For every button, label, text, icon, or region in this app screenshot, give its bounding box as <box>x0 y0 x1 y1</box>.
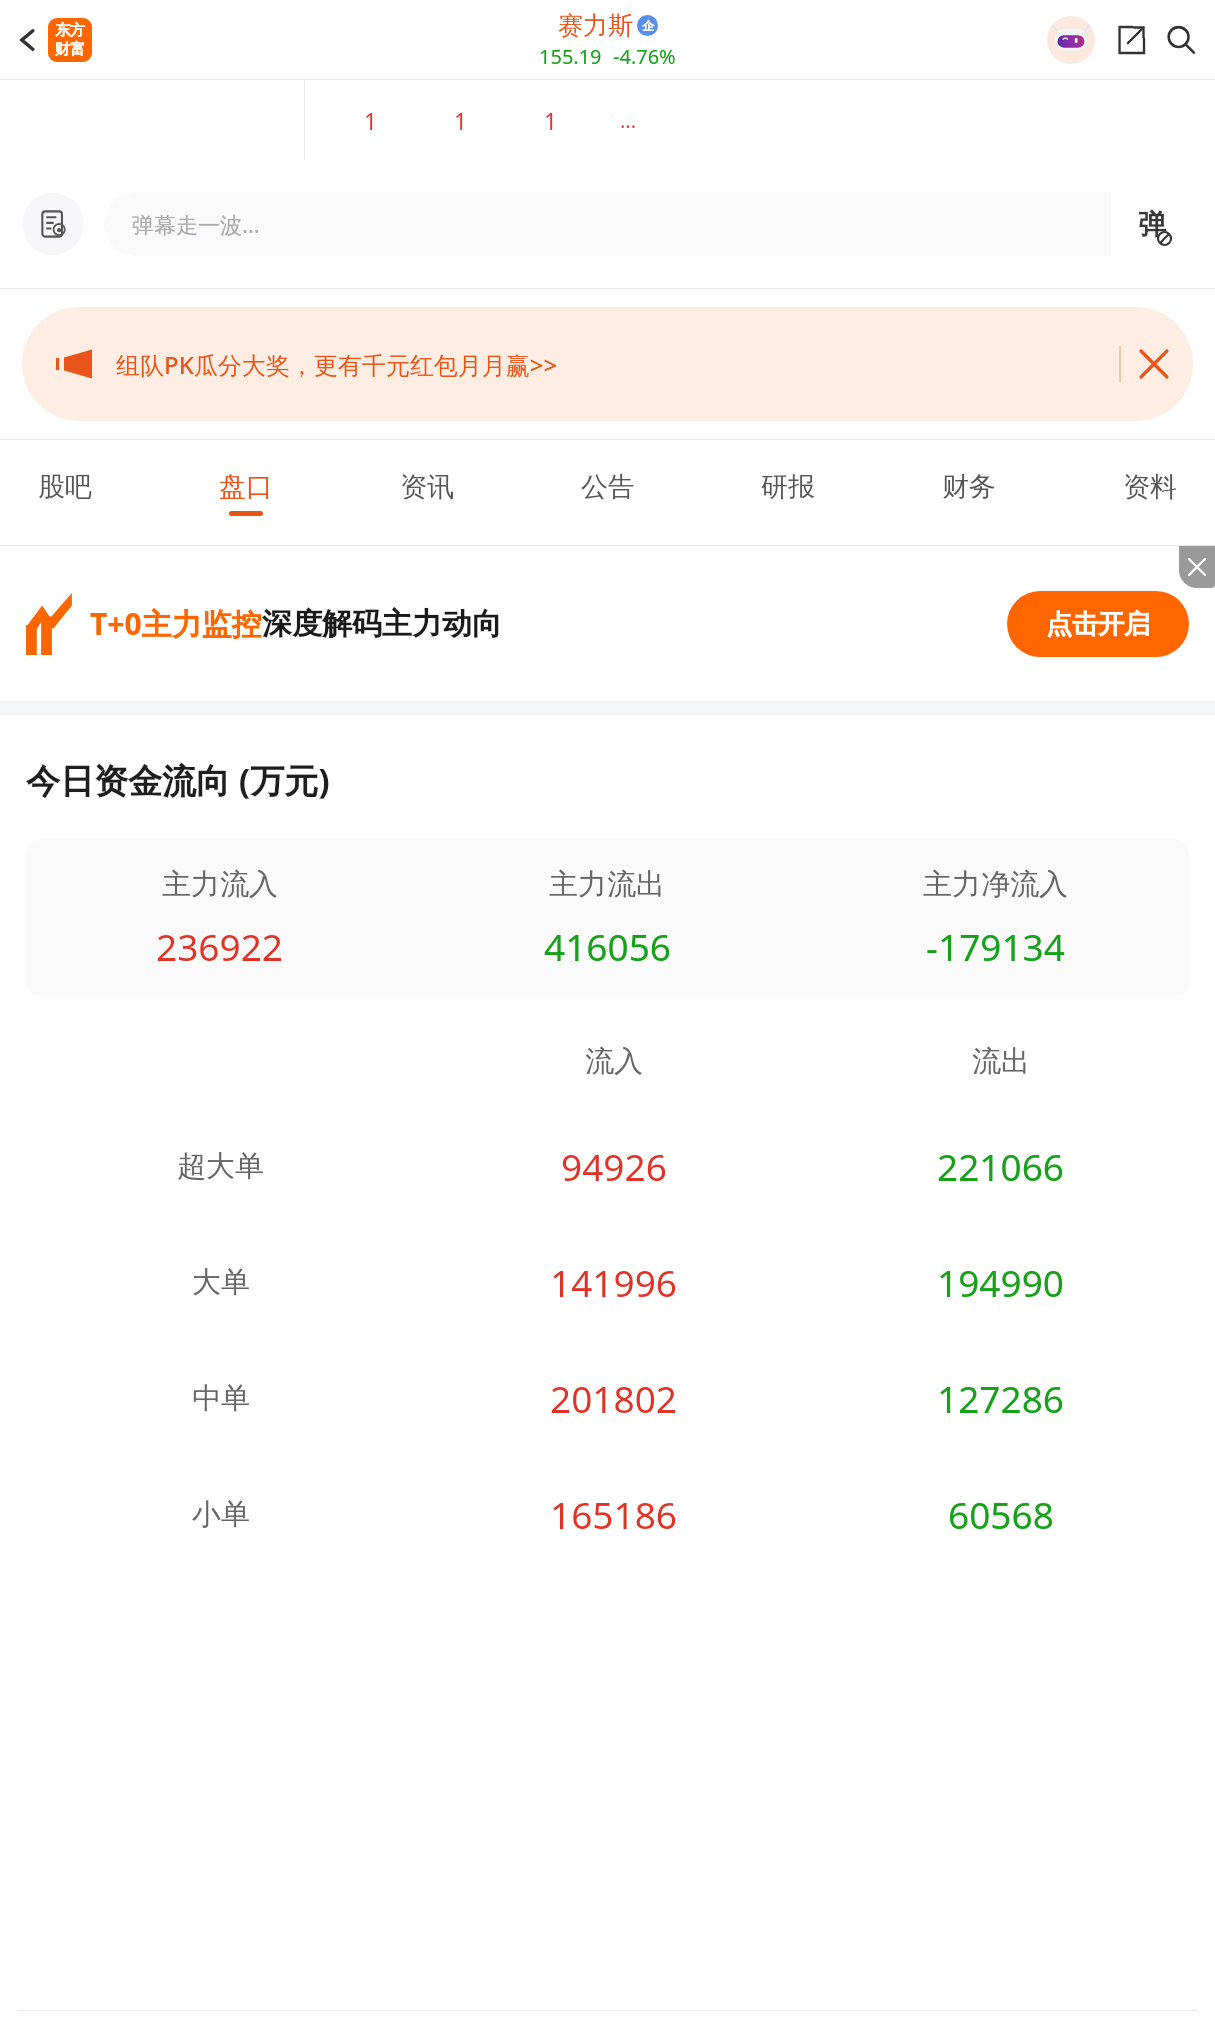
staticText: 财务 <box>942 470 996 504</box>
staticText: T+0主力监控 <box>90 603 262 644</box>
staticText: 60568 <box>948 1489 1054 1539</box>
staticText: 股吧 <box>38 470 92 504</box>
button[interactable]: T+0主力监控 <box>26 546 1189 701</box>
staticText: 主力流出 <box>549 866 665 903</box>
button[interactable]: 组队PK瓜分大奖，更有千元红包月月赢>> <box>22 307 1193 421</box>
staticText: 弹幕走一波... <box>132 209 260 239</box>
button[interactable]: Close ad <box>1179 546 1215 588</box>
staticText: 155.19 <box>539 43 602 70</box>
staticText: 416056 <box>544 921 671 971</box>
staticText: 今日资金流向 (万元) <box>26 757 330 803</box>
staticText: 财富 <box>55 40 85 59</box>
staticText: 研报 <box>761 470 815 504</box>
staticText: 东方 <box>55 21 85 40</box>
staticText: 127286 <box>937 1373 1064 1423</box>
staticText: 弹 <box>1138 207 1166 242</box>
staticText: 194990 <box>937 1257 1064 1307</box>
staticText: 201802 <box>550 1373 677 1423</box>
staticText: 赛力斯 <box>558 10 633 41</box>
staticText: 组队PK瓜分大奖，更有千元红包月月赢>> <box>116 348 558 381</box>
staticText: 236922 <box>156 921 283 971</box>
button[interactable]: 研报 <box>755 462 821 524</box>
button[interactable]: 弹幕走一波... <box>104 192 1193 256</box>
button[interactable]: Send danmu <box>1111 192 1193 256</box>
button[interactable]: 赛力斯 <box>539 10 676 70</box>
staticText: 中单 <box>192 1380 250 1417</box>
staticText: 1 <box>364 105 378 136</box>
staticText: -179134 <box>926 921 1065 971</box>
staticText: 141996 <box>550 1257 677 1307</box>
button[interactable]: Search <box>1155 14 1207 66</box>
staticText: 主力流入 <box>162 866 278 903</box>
staticText: 流入 <box>585 1043 643 1080</box>
staticText: 深度解码主力动向 <box>262 605 502 643</box>
staticText: 超大单 <box>177 1148 264 1185</box>
button[interactable]: 大单 <box>0 1224 1215 1340</box>
button[interactable]: 点击开启 <box>1007 591 1189 657</box>
button[interactable]: Share <box>1107 16 1155 64</box>
staticText: 大单 <box>192 1264 250 1301</box>
button[interactable]: 超大单 <box>0 1108 1215 1224</box>
staticText: 企 <box>642 18 654 33</box>
button[interactable]: 财务 <box>936 462 1002 524</box>
staticText: 小单 <box>192 1496 250 1533</box>
button[interactable]: Back <box>4 16 52 64</box>
staticText: 资料 <box>1123 470 1177 504</box>
button[interactable]: East Money home <box>48 18 92 62</box>
staticText: 流出 <box>972 1043 1030 1080</box>
staticText: 主力净流入 <box>923 866 1068 903</box>
staticText: 1 <box>454 105 468 136</box>
button[interactable]: 股吧 <box>32 462 98 524</box>
button[interactable]: AI assistant <box>1045 14 1097 66</box>
button[interactable]: 公告 <box>575 462 641 524</box>
button[interactable]: 中单 <box>0 1340 1215 1456</box>
button[interactable]: 主力流入 <box>26 839 1189 997</box>
staticText: 1 <box>544 105 558 136</box>
staticText: -4.76% <box>613 43 676 70</box>
staticText: 资讯 <box>400 470 454 504</box>
staticText: 公告 <box>581 470 635 504</box>
staticText: 盘口 <box>219 470 273 504</box>
staticText: 点击开启 <box>1046 608 1150 641</box>
staticText: 94926 <box>561 1141 667 1191</box>
staticText: ... <box>620 107 637 134</box>
button[interactable]: Close banner <box>1121 331 1187 397</box>
button[interactable]: 盘口 <box>213 462 279 524</box>
button[interactable]: 资讯 <box>394 462 460 524</box>
button[interactable]: 资料 <box>1117 462 1183 524</box>
button[interactable]: Danmu settings <box>22 193 84 255</box>
staticText: 221066 <box>937 1141 1064 1191</box>
button[interactable]: 小单 <box>0 1456 1215 1572</box>
staticText: 165186 <box>550 1489 677 1539</box>
